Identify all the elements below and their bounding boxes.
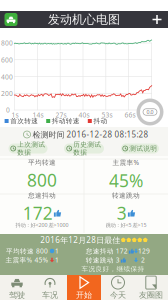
button[interactable]: 开始 [67, 275, 101, 300]
staticText: 800 [27, 169, 57, 192]
staticText: 129 [138, 247, 150, 255]
button[interactable]: 车况 [33, 275, 67, 300]
staticText: 600 [1, 56, 13, 64]
button[interactable]: Add [148, 11, 165, 28]
button[interactable]: 上次测试数据 [8, 143, 47, 153]
staticText: 1 [55, 256, 59, 264]
staticText: 平均转速 800 [6, 247, 48, 255]
staticText: 友圈图 [139, 290, 163, 300]
staticText: 27s [55, 111, 66, 119]
staticText: 1s [11, 111, 18, 119]
staticText: 抖动转速 [52, 117, 80, 125]
staticText: 上次测试数据 [17, 140, 45, 157]
staticText: 转速跳动 [112, 191, 140, 200]
staticText: 今天 [110, 290, 126, 300]
staticText: 车况 [42, 290, 58, 300]
staticText: 0.0 [146, 108, 153, 116]
staticText: 主震率% [112, 158, 139, 167]
staticText: 怠速抖动 172 [86, 247, 128, 255]
staticText: 2 [141, 256, 145, 264]
staticText: 车况良好，继续保持 [81, 265, 144, 273]
staticText: 测试说明 [129, 144, 157, 153]
staticText: 驾驶 [9, 290, 25, 300]
staticText: 172 [23, 202, 53, 225]
staticText: 40s [78, 111, 89, 119]
staticText: 14s [32, 111, 43, 119]
staticText: 主震率% 45% [5, 256, 48, 264]
staticText: 平均转速 [28, 158, 56, 167]
button[interactable]: 测试说明 [121, 143, 159, 153]
staticText: 2016年12月28日最佳 [40, 235, 120, 245]
staticText: 检测时间 2016-12-28 08:15:28 [32, 129, 148, 140]
staticText: 0 [6, 106, 10, 114]
staticText: 历史测试数据 [73, 140, 101, 157]
staticText: 3 [117, 202, 127, 225]
button[interactable]: 历史测试数据 [64, 143, 104, 153]
staticText: 抖动 [93, 117, 107, 125]
button[interactable]: 今天 [101, 275, 135, 300]
staticText: 转速跳动 3 [86, 256, 120, 264]
staticText: 1 [55, 247, 59, 255]
button[interactable]: 友圈图 [134, 275, 168, 300]
staticText: 怠速抖动 [28, 191, 56, 200]
staticText: 发动机心电图 [48, 12, 120, 27]
staticText: 首次转速 [10, 117, 38, 125]
staticText: 400 [1, 73, 13, 81]
button[interactable]: My car [2, 11, 19, 28]
staticText: 79s [146, 111, 157, 119]
button[interactable]: 驾驶 [0, 275, 34, 300]
staticText: 抖动：好<200 差>1000 [15, 221, 68, 229]
staticText: 800 [1, 39, 13, 47]
staticText: 45% [109, 169, 143, 192]
staticText: 开始 [76, 290, 92, 300]
staticText: 66s [124, 111, 135, 119]
staticText: 跳动：好<5 差>15 [105, 221, 146, 229]
staticText: 53s [101, 111, 112, 119]
staticText: 200 [1, 89, 13, 98]
